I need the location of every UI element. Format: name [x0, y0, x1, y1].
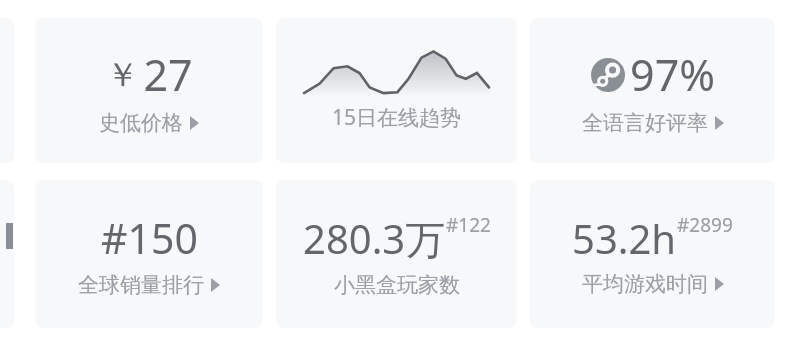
staticText: 全语言好评率	[582, 110, 708, 136]
staticText: ￥	[106, 54, 139, 96]
button[interactable]: ￥	[35, 18, 263, 163]
staticText: 27	[143, 45, 193, 104]
staticText: 15日在线趋势	[332, 103, 462, 132]
staticText: 全球销量排行	[78, 272, 204, 298]
staticText: 小黑盒玩家数	[334, 272, 460, 298]
staticText: 平均游戏时间	[582, 271, 708, 297]
staticText: 53.2h	[572, 211, 677, 265]
staticText: #150	[101, 210, 198, 266]
button[interactable]: #150	[35, 180, 263, 328]
staticText: #2899	[677, 212, 733, 238]
button[interactable]: 280.3万	[276, 180, 517, 328]
staticText: 280.3万	[303, 211, 446, 266]
staticText: 97%	[630, 45, 715, 104]
staticText: 史低价格	[99, 110, 183, 136]
button[interactable]: Previous stat	[0, 180, 14, 328]
staticText: #122	[446, 212, 491, 238]
button[interactable]: 97%	[530, 18, 775, 163]
button[interactable]: 53.2h	[530, 180, 775, 328]
button[interactable]: 15日在线趋势	[276, 18, 517, 163]
